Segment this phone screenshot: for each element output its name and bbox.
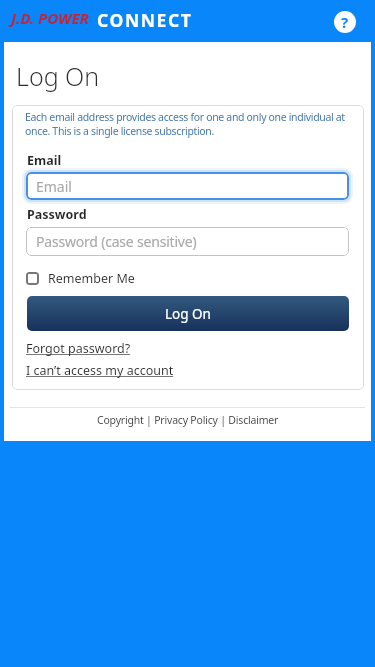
staticText: Password [27,206,87,223]
button[interactable]: Forgot password? [26,340,131,357]
staticText: once. This is a single license subscript… [25,124,215,138]
staticText: Email [36,177,72,196]
staticText: Each email address provides access for o… [25,110,345,124]
button[interactable]: Email [26,172,349,200]
button[interactable]: Log On [27,296,349,331]
staticText: Log On [165,305,211,323]
staticText: Copyright | Privacy Policy | Disclaimer [97,413,279,427]
staticText: Password (case sensitive) [36,232,197,251]
staticText: Email [27,152,62,169]
button[interactable]: ? [334,11,356,33]
button[interactable]: Copyright | Privacy Policy | Disclaimer [4,411,371,429]
button[interactable]: Password (case sensitive) [26,227,349,256]
staticText: Log On [16,59,100,93]
button[interactable]: Remember Me [26,270,135,287]
staticText: ? [341,12,349,32]
staticText: J.D. POWER [11,8,89,28]
staticText: Remember Me [48,270,135,287]
button[interactable]: I can’t access my account [26,362,174,379]
staticText: CONNECT [97,8,193,32]
